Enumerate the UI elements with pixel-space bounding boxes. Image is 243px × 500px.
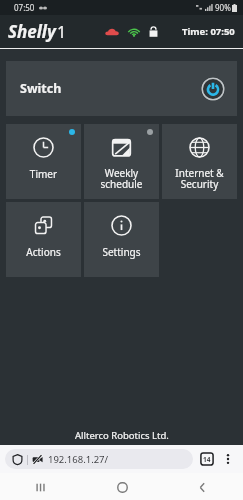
button[interactable]: Toggle switch [201,77,225,101]
button[interactable]: Tabs [199,451,215,467]
staticText: 1 [57,21,67,43]
button[interactable]: Weekly schedule [84,124,159,199]
staticText: Shelly [8,20,56,43]
button[interactable]: Recents [30,476,52,498]
staticText: Time: 07:50 [182,25,235,38]
button[interactable]: Site security [5,449,193,469]
staticText: Allterco Robotics Ltd. [75,429,169,442]
button[interactable]: Back [191,476,213,498]
staticText: Actions [6,245,81,259]
other: WiFi [128,27,140,37]
staticText: Weekly schedule [84,166,159,191]
staticText: Timer [6,167,81,181]
staticText: Switch [20,80,62,97]
button[interactable]: Timer [6,124,81,199]
button[interactable]: More options [220,451,236,467]
button[interactable]: Actions [6,202,81,277]
staticText: 14 [203,455,211,464]
other: Camera blocked [32,454,43,465]
other: Cloud [105,27,119,37]
staticText: Internet & Security [162,166,237,191]
button[interactable]: Switch [6,61,237,116]
other: Secure [149,26,158,37]
staticText: 192.168.1.27/ [48,453,109,466]
staticText: Settings [84,245,159,259]
staticText: 90% [215,2,231,13]
staticText: 07:50 [14,2,35,13]
button[interactable]: Settings [84,202,159,277]
button[interactable]: Home [111,476,133,498]
button[interactable]: Internet & Security [162,124,237,199]
other: Site security [12,454,23,465]
